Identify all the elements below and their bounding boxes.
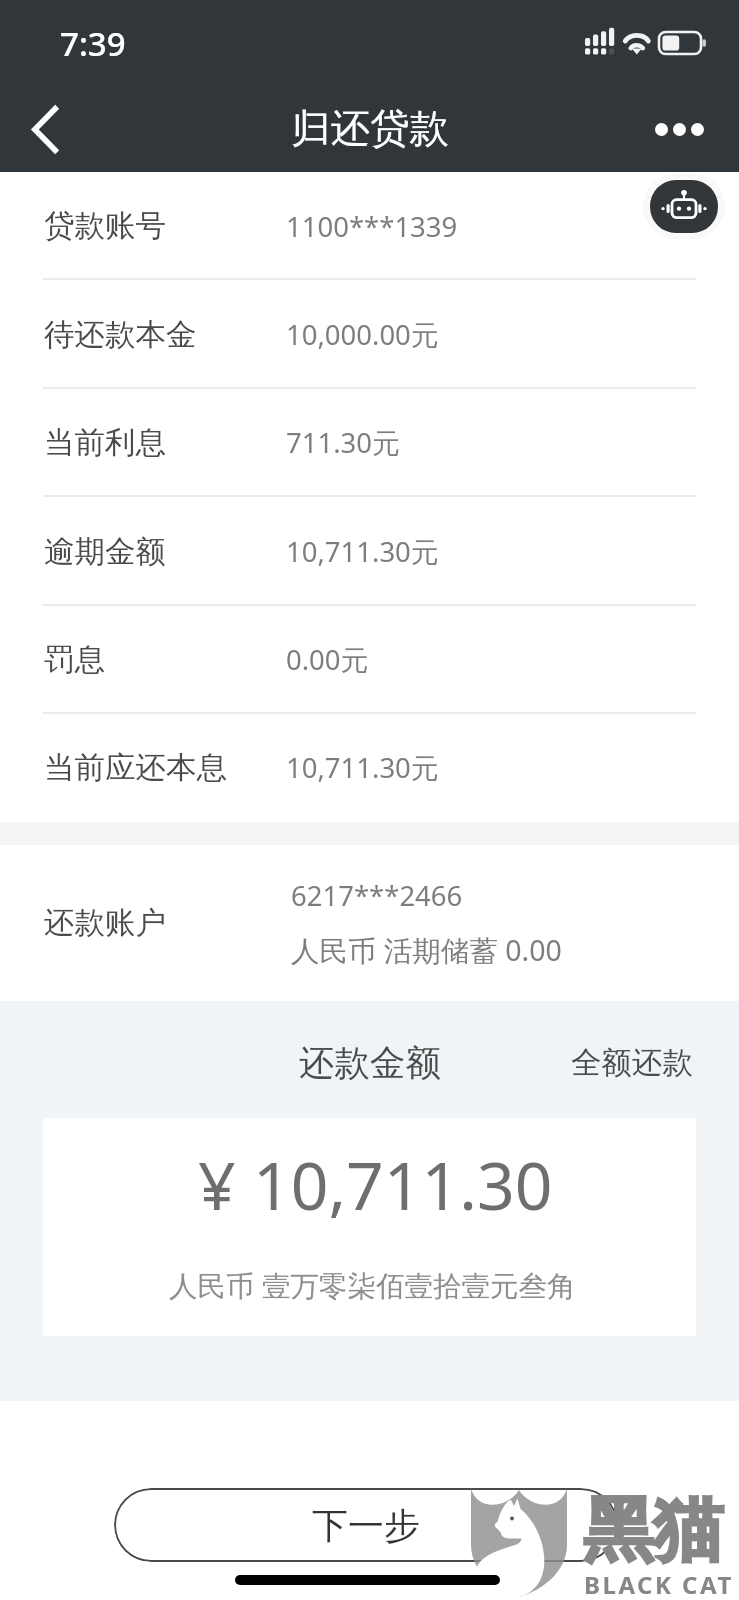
button[interactable]: Back: [0, 86, 90, 172]
staticText: 贷款账号: [44, 207, 166, 245]
staticText: ¥ 10,711.30: [198, 1139, 553, 1229]
button[interactable]: 逾期金额: [0, 497, 739, 606]
button[interactable]: 罚息: [0, 606, 739, 714]
button[interactable]: More options: [651, 86, 739, 172]
button[interactable]: 还款账户: [0, 845, 739, 1001]
staticText: 人民币 壹万零柒佰壹拾壹元叁角: [169, 1266, 576, 1305]
staticText: 7:39: [60, 21, 126, 66]
staticText: 还款金额: [299, 1041, 441, 1086]
staticText: 711.30元: [286, 424, 400, 462]
button[interactable]: ¥ 10,711.30: [43, 1118, 696, 1336]
staticText: 逾期金额: [44, 533, 166, 571]
staticText: 黑猫: [583, 1487, 723, 1575]
button[interactable]: 待还款本金: [0, 280, 739, 389]
button[interactable]: 贷款账号: [0, 172, 739, 280]
button[interactable]: 全额还款: [555, 1032, 709, 1094]
staticText: 归还贷款: [291, 104, 449, 154]
button[interactable]: 当前应还本息: [0, 714, 739, 822]
staticText: 0.00元: [286, 641, 369, 679]
staticText: 待还款本金: [44, 316, 197, 354]
button[interactable]: 下一步: [114, 1488, 618, 1562]
staticText: 还款账户: [44, 904, 166, 942]
staticText: 罚息: [44, 641, 105, 679]
staticText: 当前应还本息: [44, 749, 227, 787]
staticText: 人民币 活期储蓄 0.00: [291, 931, 562, 970]
staticText: 6217***2466: [291, 877, 463, 914]
staticText: BLACK CAT: [584, 1568, 734, 1600]
staticText: 10,000.00元: [286, 316, 439, 354]
staticText: 当前利息: [44, 424, 166, 462]
staticText: 1100***1339: [286, 208, 458, 245]
staticText: 10,711.30元: [286, 749, 439, 787]
button[interactable]: Chat assistant: [650, 180, 718, 233]
staticText: 10,711.30元: [286, 533, 439, 571]
staticText: 全额还款: [571, 1044, 693, 1082]
staticText: 下一步: [312, 1503, 420, 1548]
button[interactable]: 当前利息: [0, 389, 739, 497]
